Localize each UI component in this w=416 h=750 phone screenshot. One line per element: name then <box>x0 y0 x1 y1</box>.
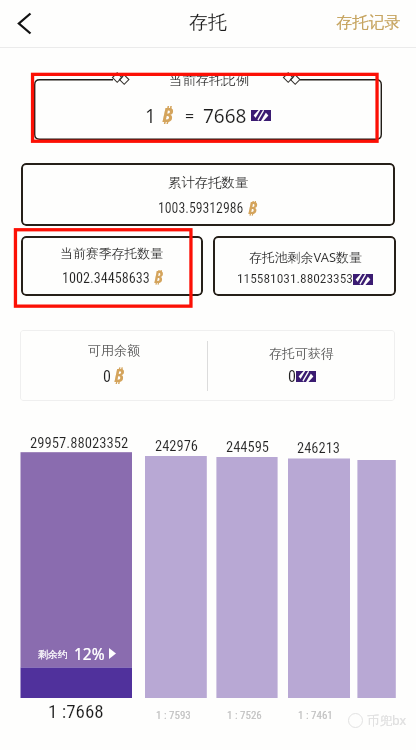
staticText: 1003.59312986 <box>158 200 244 216</box>
staticText: 剩余约 <box>38 648 68 661</box>
staticText: 0 <box>288 367 296 386</box>
staticText: 存托可获得 <box>269 345 334 361</box>
button[interactable]: 存托可获得 <box>208 330 395 401</box>
staticText: 242976 <box>155 438 198 455</box>
staticText: = <box>185 105 195 127</box>
staticText: 115581031.88023353 <box>237 271 353 287</box>
staticText: 当前赛季存托数量 <box>60 246 164 262</box>
staticText: 累计存托数量 <box>168 174 249 191</box>
staticText: 当前存托比例 <box>169 72 250 86</box>
staticText: 29957.88023352 <box>30 434 129 451</box>
staticText: 1 <box>145 103 156 129</box>
button[interactable]: 可用余额 <box>20 330 207 401</box>
staticText: ₿ <box>248 196 258 218</box>
button[interactable]: 存托记录 <box>322 2 416 46</box>
staticText: ₿ <box>154 266 163 288</box>
staticText: 1 :7668 <box>48 700 104 722</box>
staticText: 7668 <box>203 103 247 129</box>
staticText: 存托 <box>189 11 227 35</box>
staticText: 0 <box>103 367 111 386</box>
staticText: 246213 <box>297 440 340 457</box>
staticText: 12% <box>74 643 105 664</box>
staticText: 1 : 7593 <box>156 709 191 722</box>
button[interactable]: 当前赛季存托数量 <box>21 236 203 296</box>
button[interactable]: Back <box>0 0 49 47</box>
button[interactable]: 存托池剩余VAS数量 <box>213 236 396 296</box>
staticText: 1002.34458633 <box>62 270 150 287</box>
staticText: ₿ <box>162 101 174 128</box>
staticText: 可用余额 <box>88 342 140 358</box>
staticText: 存托池剩余VAS数量 <box>249 248 362 266</box>
staticText: 244595 <box>226 439 269 456</box>
staticText: 存托记录 <box>336 12 401 32</box>
staticText: 1 : 7526 <box>227 709 262 722</box>
button[interactable]: 累计存托数量 <box>21 163 395 226</box>
staticText: 币兜bx <box>367 712 407 729</box>
staticText: ₿ <box>114 363 124 388</box>
staticText: 1 : 7461 <box>298 709 333 722</box>
